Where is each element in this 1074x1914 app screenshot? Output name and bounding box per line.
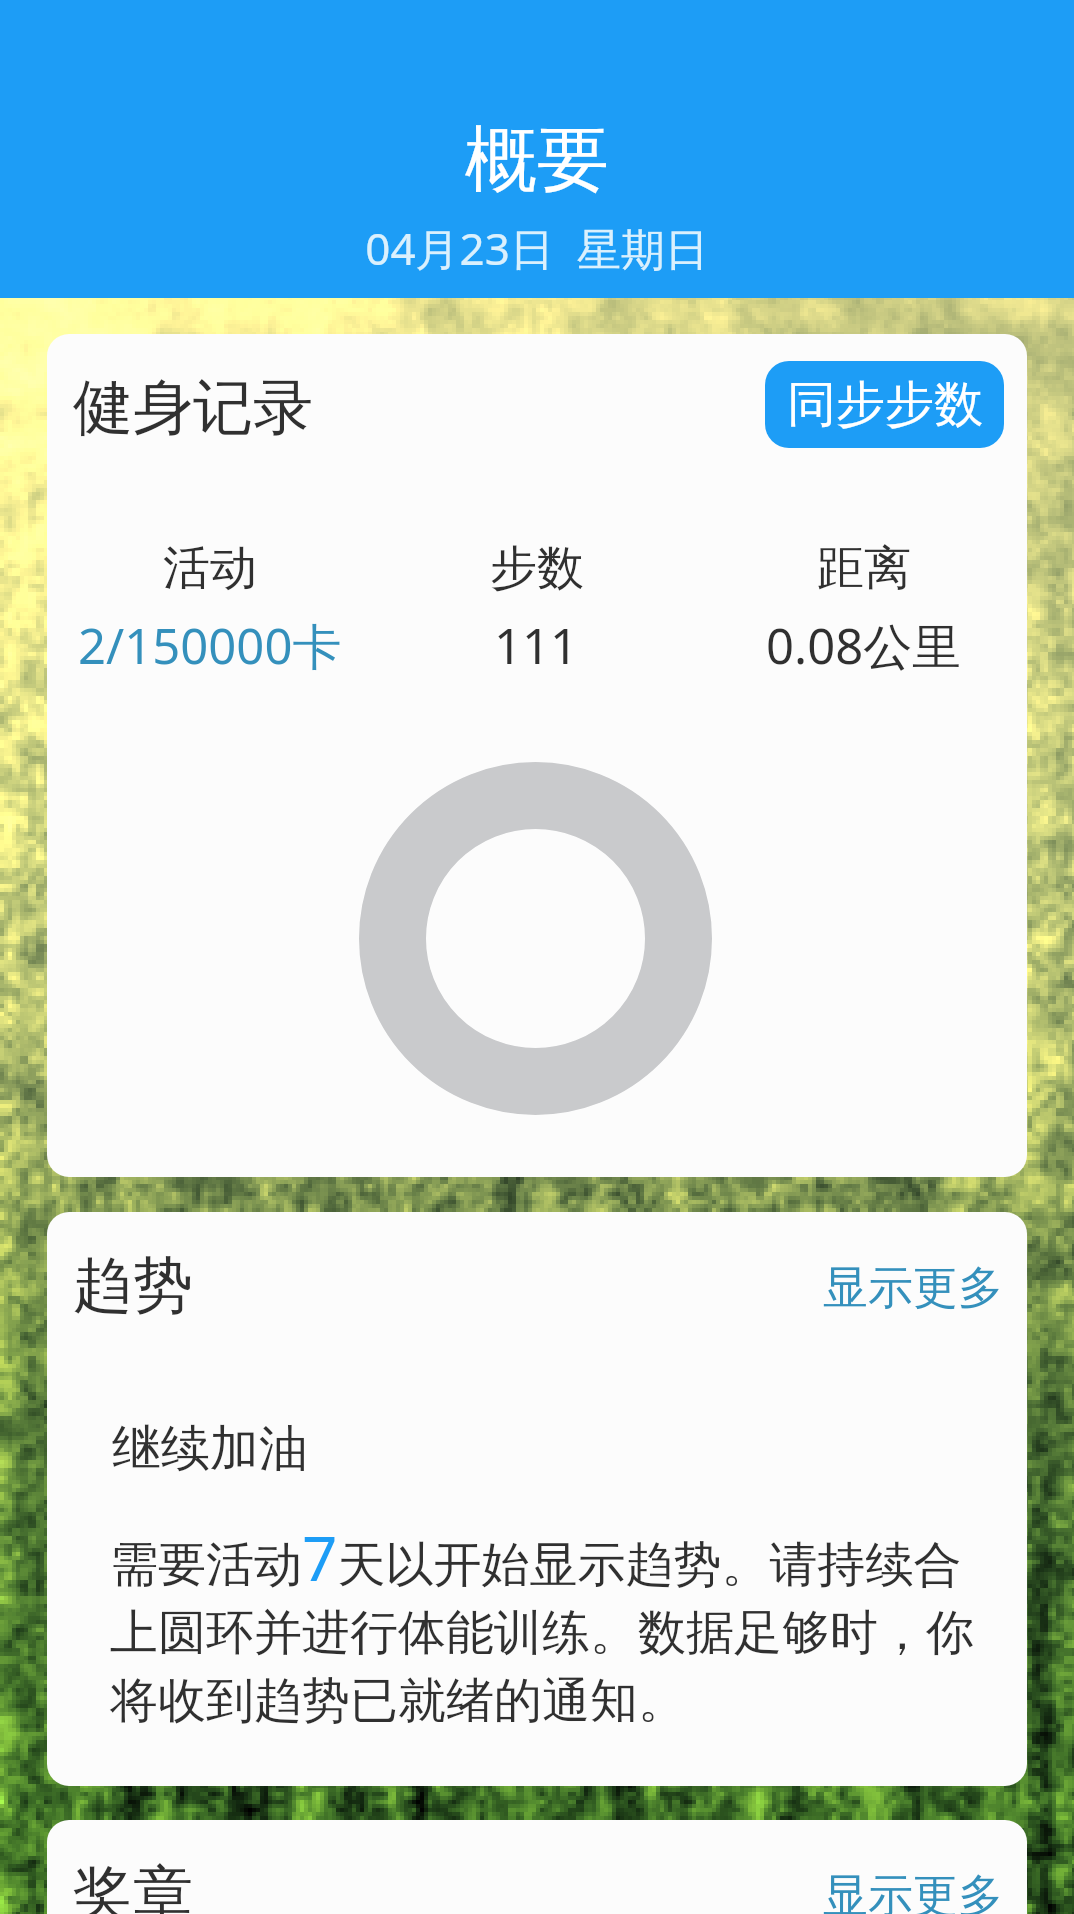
staticText: 活动: [163, 539, 257, 598]
staticText: 步数: [490, 539, 584, 598]
button[interactable]: 活动: [47, 539, 373, 679]
button[interactable]: 活动圆环: [359, 762, 712, 1115]
staticText: 趋势: [73, 1248, 193, 1324]
staticText: 同步步数: [787, 374, 983, 436]
button[interactable]: 距离: [700, 539, 1027, 679]
staticText: 继续加油: [112, 1418, 308, 1480]
staticText: 健身记录: [73, 370, 313, 446]
button[interactable]: 同步步数: [765, 361, 1004, 448]
staticText: 0.08公里: [766, 612, 962, 679]
button[interactable]: 显示更多: [803, 1240, 1023, 1337]
button[interactable]: 步数: [373, 539, 700, 679]
button[interactable]: 显示更多: [803, 1848, 1023, 1914]
staticText: 概要: [0, 115, 1074, 206]
staticText: 显示更多: [823, 1868, 1003, 1914]
staticText: 需要活动7天以开始显示趋势。请持续合 上圆环并进行体能训练。数据足够时，你 将收…: [110, 1515, 974, 1731]
staticText: 111: [494, 612, 579, 679]
staticText: 距离: [817, 539, 911, 598]
staticText: 奖章: [73, 1856, 193, 1914]
staticText: 04月23日 星期日: [0, 218, 1074, 278]
staticText: 2/150000卡: [78, 612, 342, 679]
staticText: 显示更多: [823, 1260, 1003, 1317]
